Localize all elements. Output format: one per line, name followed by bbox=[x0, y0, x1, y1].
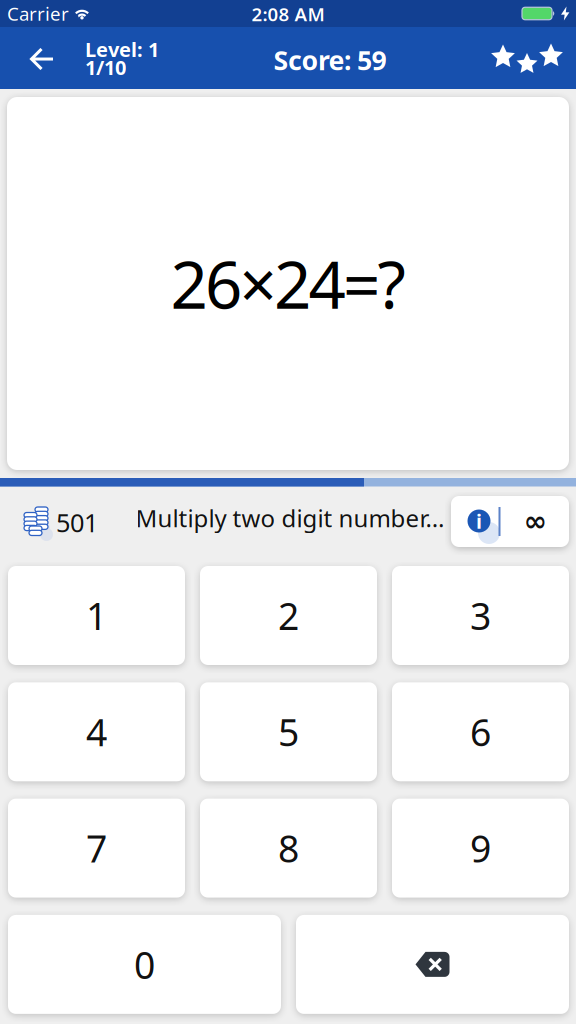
staticText: 26×24=? bbox=[170, 240, 405, 327]
button[interactable]: 9 bbox=[392, 799, 569, 898]
button[interactable]: 3 bbox=[392, 566, 569, 665]
staticText: 1 bbox=[86, 591, 107, 640]
button[interactable]: 2 bbox=[200, 566, 377, 665]
staticText: 8 bbox=[278, 823, 299, 873]
button[interactable] bbox=[296, 915, 569, 1014]
staticText: Level: 1 bbox=[85, 36, 159, 63]
staticText: 3 bbox=[470, 591, 491, 640]
button[interactable]: 5 bbox=[200, 682, 377, 781]
staticText: 6 bbox=[470, 707, 491, 757]
staticText: Score: 59 bbox=[273, 42, 386, 78]
button[interactable]: i bbox=[467, 509, 490, 532]
button[interactable]: 8 bbox=[200, 799, 377, 898]
staticText: 9 bbox=[470, 823, 491, 873]
staticText: 4 bbox=[86, 707, 107, 757]
staticText: 1/10 bbox=[85, 54, 126, 81]
staticText: 2:08 AM bbox=[251, 2, 324, 26]
button[interactable] bbox=[18, 42, 65, 76]
staticText: 2 bbox=[278, 591, 299, 640]
button[interactable]: 1 bbox=[8, 566, 185, 665]
staticText: 7 bbox=[86, 823, 107, 873]
staticText: Multiply two digit number… bbox=[135, 502, 444, 534]
staticText: 0 bbox=[134, 940, 155, 989]
button[interactable]: 6 bbox=[392, 682, 569, 781]
staticText: ∞ bbox=[523, 505, 546, 537]
button[interactable]: 4 bbox=[8, 682, 185, 781]
button[interactable]: 0 bbox=[8, 915, 281, 1014]
staticText: 5 bbox=[278, 707, 299, 757]
staticText: Carrier bbox=[7, 1, 69, 26]
staticText: i bbox=[476, 508, 482, 534]
button[interactable]: 7 bbox=[8, 799, 185, 898]
button[interactable]: ∞ bbox=[510, 498, 560, 544]
staticText: 501 bbox=[56, 505, 98, 539]
